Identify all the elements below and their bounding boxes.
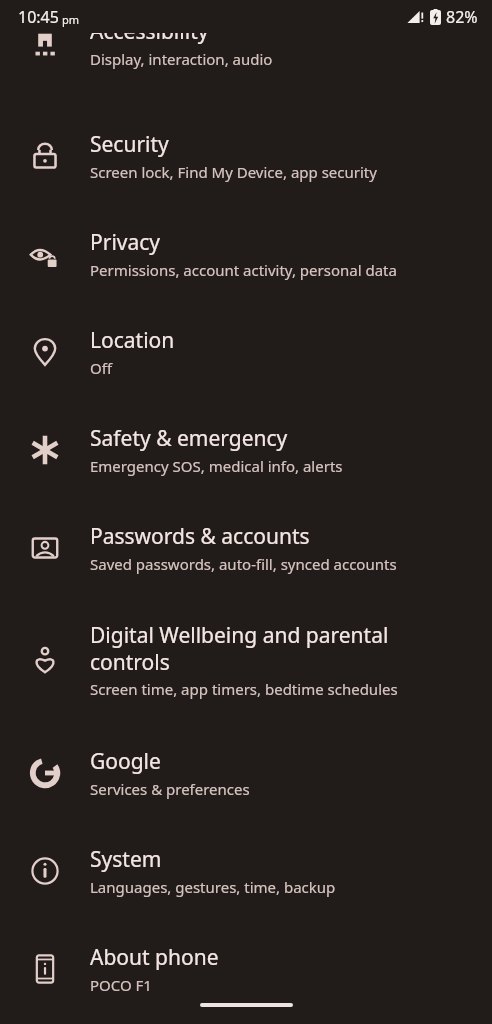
button[interactable]: Passwords & accounts [0, 502, 492, 594]
other: Accessibility [28, 32, 62, 66]
staticText: 10:45 [18, 6, 59, 28]
staticText: Google [90, 747, 161, 776]
staticText: System [90, 845, 162, 874]
staticText: Saved passwords, auto-fill, synced accou… [90, 554, 397, 574]
staticText: Screen time, app timers, bedtime schedul… [90, 679, 398, 699]
staticText: Passwords & accounts [90, 522, 310, 551]
button[interactable]: Location [0, 306, 492, 398]
staticText: Digital Wellbeing and parental controls [90, 621, 460, 676]
button[interactable]: Google [0, 727, 492, 819]
button[interactable]: Privacy [0, 208, 492, 300]
staticText: Privacy [90, 228, 161, 257]
staticText: Screen lock, Find My Device, app securit… [90, 162, 377, 182]
button[interactable]: Security [0, 110, 492, 202]
staticText: Accessibility [90, 17, 209, 46]
button[interactable]: About phone [0, 923, 492, 1015]
staticText: pm [62, 12, 80, 27]
staticText: Display, interaction, audio [90, 49, 273, 69]
button[interactable]: Digital Wellbeing and parental controls [0, 600, 492, 720]
staticText: Languages, gestures, time, backup [90, 877, 336, 897]
staticText: Location [90, 326, 175, 355]
button[interactable]: Safety & emergency [0, 404, 492, 496]
staticText: POCO F1 [90, 975, 152, 995]
staticText: Security [90, 130, 169, 159]
staticText: 82% [446, 6, 478, 28]
button[interactable]: System [0, 825, 492, 917]
staticText: Services & preferences [90, 779, 250, 799]
button[interactable]: Accessibility [0, 0, 492, 80]
staticText: Emergency SOS, medical info, alerts [90, 456, 343, 476]
staticText: Permissions, account activity, personal … [90, 260, 397, 280]
staticText: Off [90, 358, 113, 378]
staticText: About phone [90, 943, 219, 972]
staticText: Safety & emergency [90, 424, 288, 453]
